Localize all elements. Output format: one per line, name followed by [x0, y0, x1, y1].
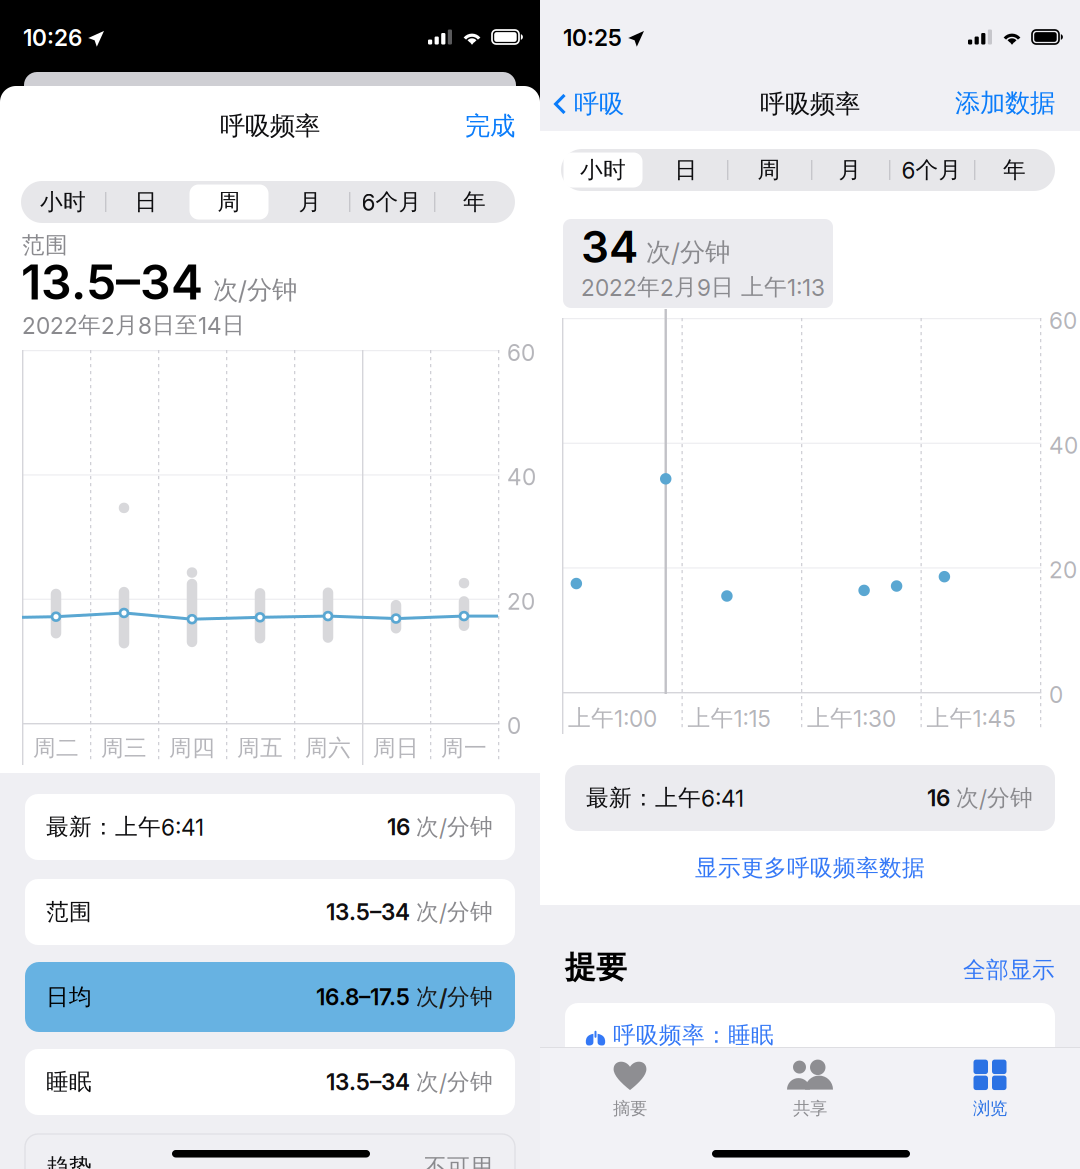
button[interactable]: 月	[271, 181, 349, 223]
staticText: 月	[838, 156, 861, 184]
button[interactable]: 睡眠	[25, 1049, 515, 1115]
staticText: 日均	[46, 983, 92, 1011]
button[interactable]: 日	[105, 181, 187, 223]
staticText: 呼吸频率：睡眠	[613, 1021, 774, 1050]
staticText: 周二	[33, 734, 79, 762]
staticText: 呼吸	[574, 88, 624, 120]
staticText: 0	[507, 712, 521, 739]
staticText: 周日	[373, 734, 419, 762]
staticText: 20	[507, 588, 535, 615]
staticText: 小时	[580, 156, 626, 184]
staticText: 添加数据	[955, 87, 1055, 119]
button[interactable]: 范围	[25, 879, 515, 945]
staticText: 13.5–34	[326, 898, 410, 926]
button[interactable]: 共享	[720, 1053, 900, 1125]
staticText: 趋势	[46, 1153, 92, 1169]
staticText: 呼吸频率	[220, 110, 320, 142]
button[interactable]: 周	[187, 181, 271, 223]
staticText: 10:26	[23, 24, 82, 51]
button[interactable]: 添加数据	[885, 80, 1055, 126]
staticText: 6个月	[901, 156, 961, 184]
staticText: 年	[1003, 156, 1026, 184]
button[interactable]: 浏览	[900, 1053, 1080, 1125]
button[interactable]: 小时	[21, 181, 105, 223]
staticText: 周四	[169, 734, 215, 762]
staticText: 上午1:00	[568, 704, 657, 733]
staticText: 月	[298, 188, 321, 216]
button[interactable]: 6个月	[349, 181, 434, 223]
staticText: 日	[134, 188, 157, 216]
staticText: 周三	[101, 734, 147, 762]
staticText: 34	[581, 220, 638, 273]
staticText: 全部显示	[963, 956, 1055, 984]
staticText: 睡眠	[46, 1068, 92, 1096]
button[interactable]: 小时	[561, 149, 645, 191]
button[interactable]: 月	[811, 149, 889, 191]
staticText: 上午1:30	[807, 704, 896, 733]
staticText: 上午1:15	[687, 704, 770, 733]
staticText: 浏览	[973, 1098, 1007, 1119]
staticText: 周	[217, 188, 240, 216]
staticText: 40	[1049, 432, 1078, 459]
button[interactable]: 全部显示	[875, 952, 1055, 988]
staticText: 提要	[565, 948, 627, 987]
button[interactable]: 6个月	[889, 149, 974, 191]
staticText: 16.8–17.5	[316, 983, 410, 1011]
button[interactable]: 日	[645, 149, 727, 191]
staticText: 次/分钟	[416, 898, 493, 926]
staticText: 次/分钟	[646, 236, 730, 268]
button[interactable]: 摘要	[540, 1053, 720, 1125]
staticText: 周六	[305, 734, 351, 762]
button[interactable]: 年	[434, 181, 515, 223]
staticText: 16	[387, 813, 410, 841]
button[interactable]: 周	[727, 149, 811, 191]
staticText: 不可用	[424, 1153, 493, 1169]
staticText: 显示更多呼吸频率数据	[695, 854, 925, 882]
button[interactable]: 趋势	[25, 1134, 515, 1169]
staticText: 周	[757, 156, 780, 184]
staticText: 小时	[40, 188, 86, 216]
button[interactable]: 年	[974, 149, 1055, 191]
staticText: 次/分钟	[956, 784, 1033, 812]
button[interactable]: 最新：上午6:41	[25, 794, 515, 860]
staticText: 2022年2月8日至14日	[22, 311, 245, 340]
staticText: 16	[927, 784, 950, 812]
staticText: 6个月	[361, 188, 421, 216]
staticText: 日	[674, 156, 697, 184]
staticText: 周五	[237, 734, 283, 762]
staticText: 范围	[46, 898, 92, 926]
staticText: 次/分钟	[416, 1068, 493, 1096]
button[interactable]: 显示更多呼吸频率数据	[540, 845, 1080, 891]
staticText: 呼吸频率	[760, 88, 860, 120]
staticText: 最新：上午6:41	[46, 813, 204, 841]
staticText: 10:25	[563, 24, 622, 51]
staticText: 60	[507, 339, 535, 366]
button[interactable]: 呼吸	[540, 81, 690, 127]
staticText: 范围	[22, 231, 68, 260]
staticText: 13.5–34	[21, 253, 203, 311]
staticText: 次/分钟	[213, 274, 297, 306]
staticText: 摘要	[613, 1098, 647, 1119]
button[interactable]: 最新：上午6:41	[565, 765, 1055, 831]
staticText: 2022年2月9日 上午1:13	[581, 273, 825, 302]
staticText: 年	[463, 188, 486, 216]
staticText: 完成	[465, 110, 515, 142]
staticText: 40	[507, 463, 536, 491]
staticText: 最新：上午6:41	[586, 784, 744, 812]
button[interactable]: 完成	[395, 104, 515, 148]
staticText: 周一	[441, 734, 487, 762]
staticText: 60	[1049, 307, 1077, 334]
button[interactable]: 日均	[25, 962, 515, 1032]
staticText: 20	[1049, 556, 1077, 584]
staticText: 上午1:45	[926, 704, 1015, 733]
staticText: 共享	[793, 1098, 827, 1119]
staticText: 次/分钟	[416, 813, 493, 841]
staticText: 次/分钟	[416, 983, 493, 1011]
staticText: 0	[1049, 681, 1063, 708]
staticText: 13.5–34	[326, 1068, 410, 1096]
